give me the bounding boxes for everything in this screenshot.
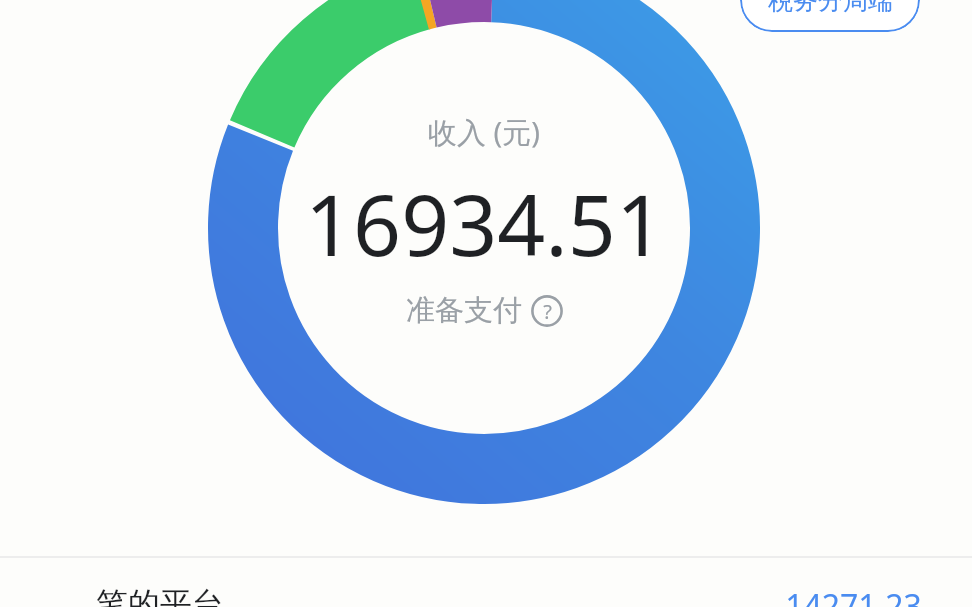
button[interactable]: 税务分局端 [740,0,920,32]
staticText: ? [543,298,552,325]
button[interactable]: 笔的平台 [0,584,972,607]
staticText: 收入 (元) [428,112,540,152]
staticText: 16934.51 [305,166,664,280]
staticText: 税务分局端 [768,0,893,16]
staticText: 笔的平台 [96,584,224,607]
staticText: 14271.23 [785,584,922,607]
button[interactable]: 准备支付 [402,290,567,331]
staticText: 准备支付 [406,292,522,329]
